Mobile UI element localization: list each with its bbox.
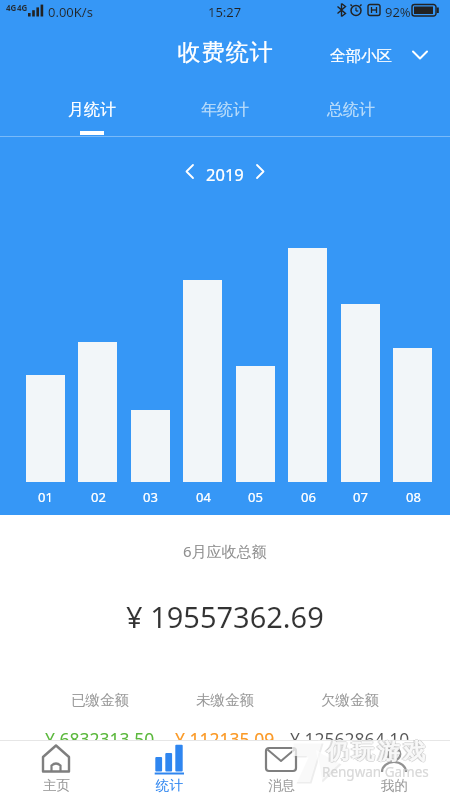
staticText: 05	[248, 488, 263, 506]
staticText: 仍玩游戏	[325, 737, 427, 765]
staticText: 已缴金额	[71, 691, 129, 709]
staticText: 欠缴金额	[321, 691, 379, 709]
staticText: 未缴金额	[196, 691, 254, 709]
staticText: 月统计	[68, 100, 116, 120]
staticText: Rengwan Games	[322, 763, 429, 781]
staticText: 06	[301, 488, 316, 506]
staticText: ¥ 12562864.10	[290, 727, 410, 751]
staticText: 15:27	[208, 3, 242, 21]
staticText: 仍玩游戏	[325, 738, 427, 766]
staticText: 08	[406, 488, 421, 506]
staticText: 消息	[268, 777, 295, 794]
staticText: 总统计	[327, 100, 375, 120]
staticText: 92%	[385, 3, 411, 21]
staticText: 03	[143, 488, 158, 506]
staticText: 主页	[43, 777, 70, 794]
staticText: 年统计	[201, 100, 249, 120]
staticText: 统计	[156, 777, 183, 794]
staticText: 全部小区	[330, 46, 392, 66]
staticText: 仍玩游戏	[326, 738, 428, 766]
staticText: 仍玩游戏	[323, 738, 425, 766]
staticText: 6月应收总额	[183, 541, 267, 561]
staticText: ¥ 112135.09	[175, 727, 275, 751]
staticText: 4G	[17, 2, 28, 13]
staticText: ¥ 19557362.69	[126, 597, 324, 636]
staticText: 4G	[6, 2, 17, 13]
staticText: 02	[91, 488, 106, 506]
staticText: 0.00K/s	[48, 3, 93, 21]
staticText: 收费统计	[177, 38, 273, 67]
staticText: 2019	[206, 163, 244, 185]
staticText: 04	[196, 488, 211, 506]
staticText: 仍玩游戏	[325, 739, 427, 767]
staticText: 我的	[381, 777, 408, 794]
staticText: 01	[38, 488, 53, 506]
staticText: ¥ 6832313.50	[45, 727, 155, 751]
staticText: 07	[353, 488, 368, 506]
